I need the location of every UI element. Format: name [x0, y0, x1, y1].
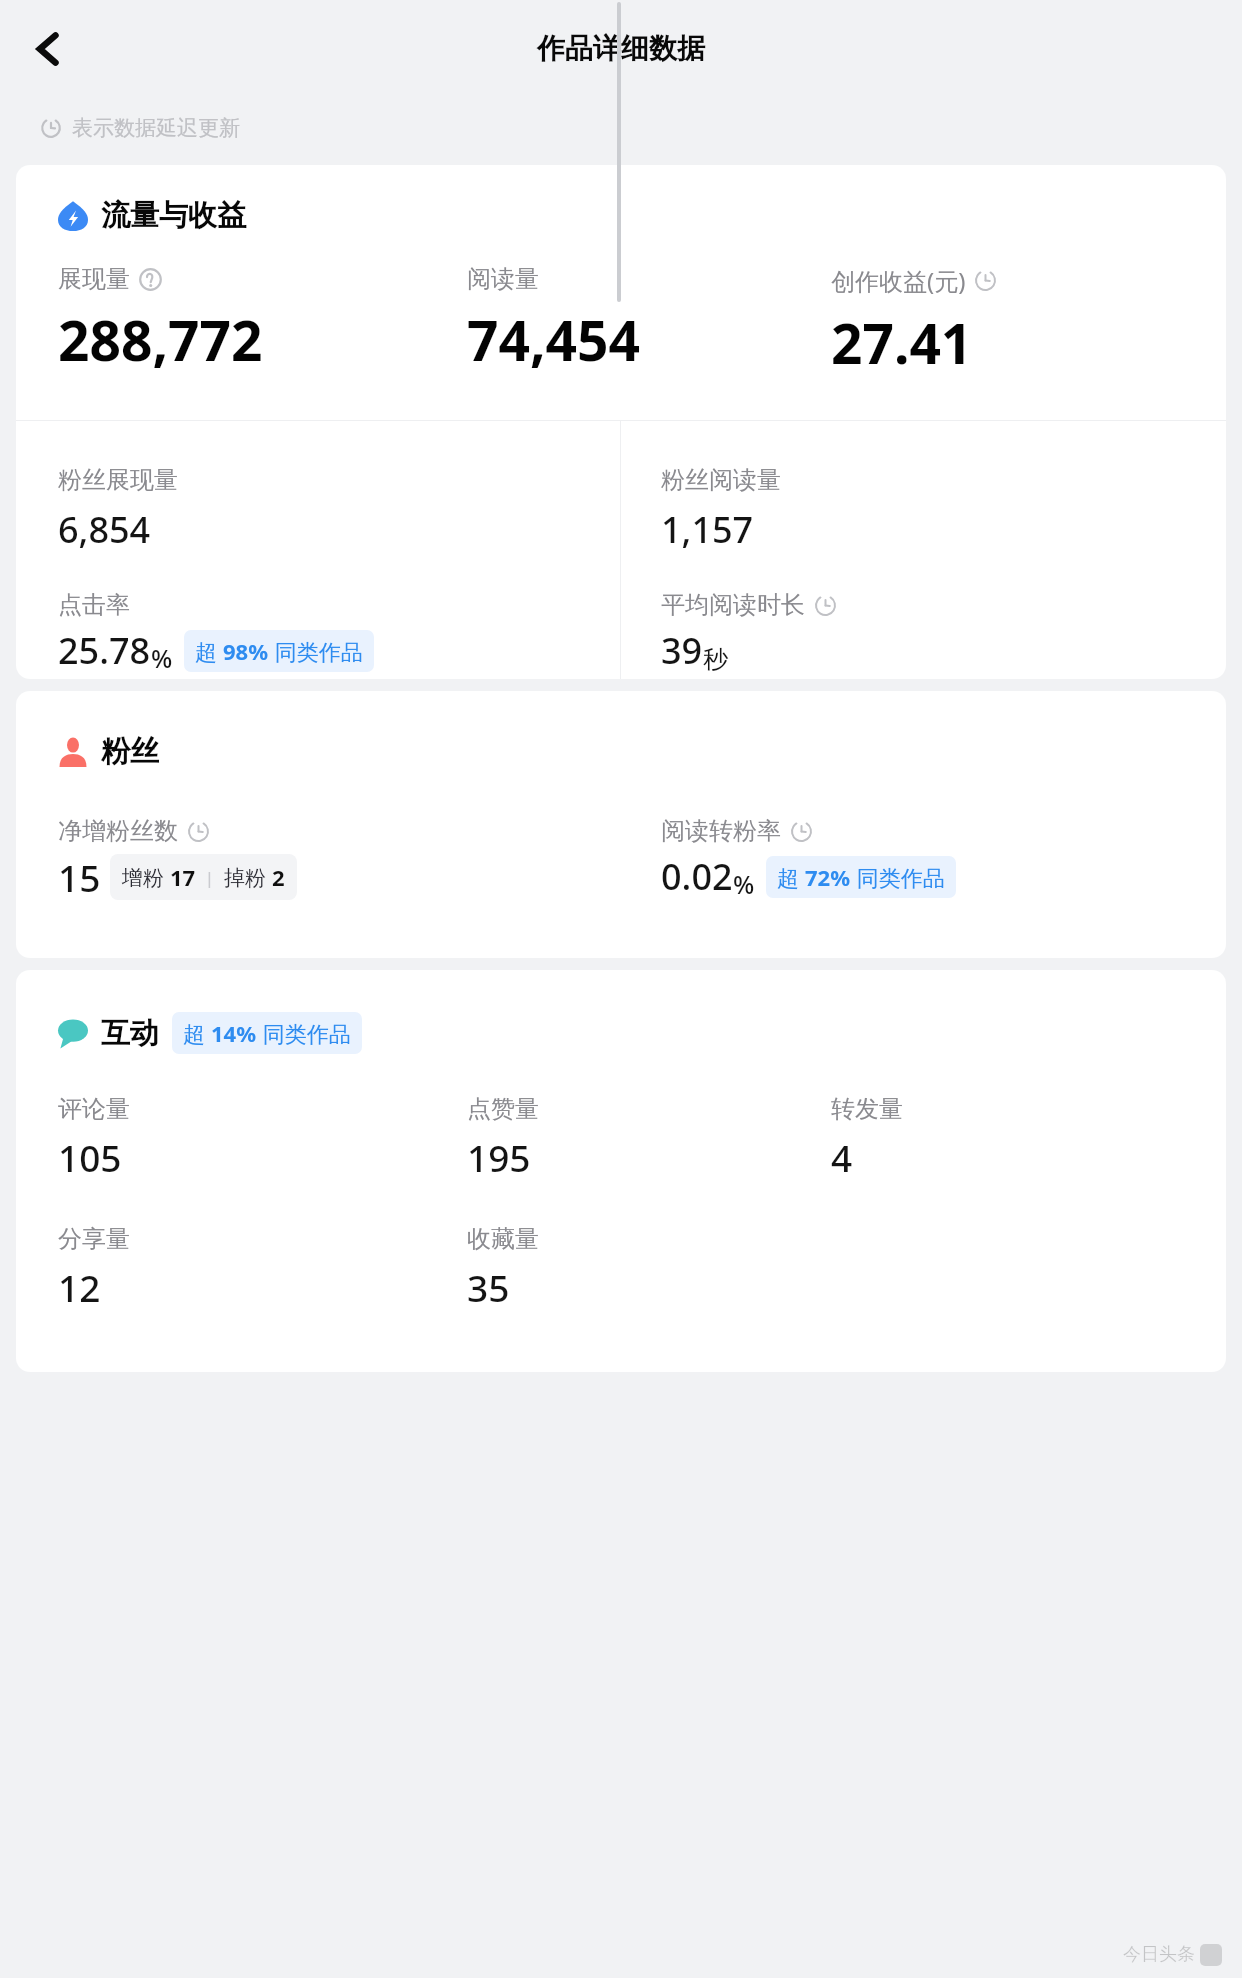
- staticText: 14%: [211, 1018, 257, 1048]
- staticText: 掉粉: [224, 863, 272, 892]
- staticText: 平均阅读时长: [661, 590, 805, 620]
- staticText: 分享量: [58, 1224, 130, 1254]
- staticText: 17: [170, 862, 196, 892]
- staticText: 秒: [703, 644, 728, 675]
- button[interactable]: 粉丝: [58, 733, 159, 770]
- staticText: 阅读量: [467, 264, 539, 294]
- button[interactable]: 超: [172, 1012, 362, 1054]
- staticText: 105: [58, 1132, 122, 1182]
- staticText: %: [733, 867, 755, 901]
- staticText: 收藏量: [467, 1224, 539, 1254]
- staticText: 6,854: [58, 505, 151, 554]
- staticText: 作品详细数据: [537, 31, 705, 66]
- staticText: 粉丝阅读量: [661, 465, 781, 495]
- staticText: 2: [272, 862, 285, 892]
- staticText: |: [196, 866, 224, 889]
- staticText: 阅读转粉率: [661, 816, 781, 846]
- staticText: 表示数据延迟更新: [72, 115, 240, 141]
- button[interactable]: Back: [14, 15, 82, 83]
- staticText: 点赞量: [467, 1094, 539, 1124]
- staticText: 粉丝展现量: [58, 465, 178, 495]
- button[interactable]: 转发量: [831, 1094, 1210, 1182]
- staticText: 同类作品: [269, 636, 363, 666]
- button[interactable]: 分享量: [58, 1224, 467, 1312]
- staticText: 39: [661, 626, 703, 675]
- staticText: 点击率: [58, 590, 130, 620]
- button[interactable]: 点赞量: [467, 1094, 831, 1182]
- staticText: 互动: [101, 1015, 159, 1052]
- staticText: 流量与收益: [101, 197, 246, 234]
- staticText: 展现量: [58, 264, 130, 294]
- staticText: 超: [183, 1018, 211, 1048]
- staticText: 创作收益(元): [831, 264, 966, 297]
- button[interactable]: 超: [766, 856, 956, 898]
- staticText: 评论量: [58, 1094, 130, 1124]
- button[interactable]: 增粉: [110, 854, 297, 900]
- button[interactable]: 收藏量: [467, 1224, 831, 1312]
- staticText: 12: [58, 1262, 101, 1312]
- staticText: 同类作品: [851, 862, 945, 892]
- staticText: 98%: [223, 636, 269, 666]
- button[interactable]: 流量与收益: [58, 197, 246, 234]
- button[interactable]: 超: [184, 630, 374, 672]
- staticText: 转发量: [831, 1094, 903, 1124]
- staticText: 净增粉丝数: [58, 816, 178, 846]
- staticText: %: [151, 641, 173, 675]
- staticText: 粉丝: [101, 733, 159, 770]
- staticText: 超: [195, 636, 223, 666]
- button[interactable]: 评论量: [58, 1094, 467, 1182]
- staticText: 195: [467, 1132, 531, 1182]
- staticText: 72%: [805, 862, 851, 892]
- staticText: 288,772: [58, 302, 263, 377]
- staticText: 27.41: [831, 305, 973, 380]
- staticText: 今日头条: [1123, 1943, 1195, 1966]
- staticText: 0.02: [661, 852, 733, 901]
- staticText: 25.78: [58, 626, 151, 675]
- staticText: 超: [777, 862, 805, 892]
- staticText: 15: [58, 852, 101, 902]
- staticText: 1,157: [661, 505, 754, 554]
- staticText: 35: [467, 1262, 510, 1312]
- staticText: 74,454: [467, 302, 640, 377]
- button[interactable]: 互动: [58, 1012, 362, 1054]
- staticText: 4: [831, 1132, 853, 1182]
- staticText: 同类作品: [257, 1018, 351, 1048]
- staticText: 增粉: [122, 863, 170, 892]
